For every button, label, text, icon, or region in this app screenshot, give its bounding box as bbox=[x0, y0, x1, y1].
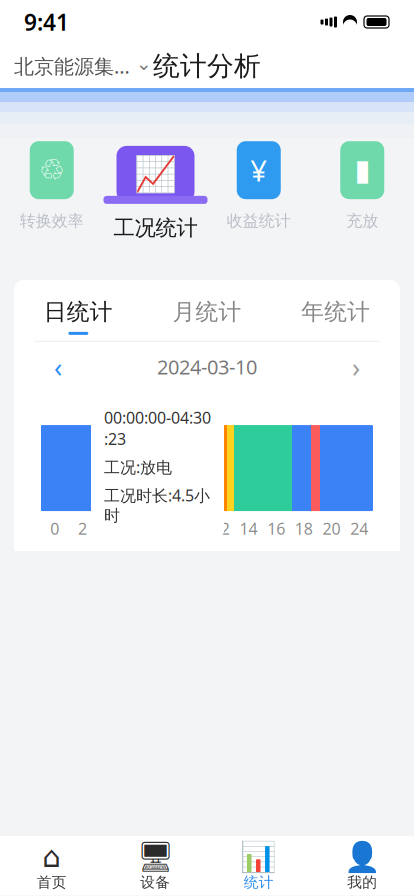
button[interactable]: 年统计 bbox=[271, 294, 400, 339]
staticText: ♲ bbox=[39, 153, 65, 187]
staticText: 静置时长： bbox=[62, 815, 157, 838]
staticText: 🖥 bbox=[137, 840, 174, 874]
button[interactable]: ♲ bbox=[0, 137, 103, 245]
staticText: 北京能源集… bbox=[14, 53, 130, 79]
button[interactable]: 月统计 bbox=[143, 294, 271, 339]
staticText: ▮ bbox=[354, 153, 370, 187]
button[interactable]: 👤 bbox=[310, 842, 414, 893]
button[interactable]: Next day bbox=[334, 350, 378, 384]
button[interactable]: 北京能源集… bbox=[0, 44, 166, 88]
button[interactable]: ¥ bbox=[207, 137, 310, 245]
staticText: ‹ bbox=[54, 349, 62, 384]
staticText: 12 bbox=[212, 518, 230, 539]
staticText: 年统计 bbox=[301, 298, 370, 326]
staticText: 首页 bbox=[37, 873, 67, 891]
staticText: 收益统计 bbox=[227, 211, 291, 231]
button[interactable]: 日统计 bbox=[14, 294, 143, 339]
staticText: 24 bbox=[350, 518, 368, 539]
staticText: ⌂ bbox=[42, 840, 61, 873]
staticText: 📊 bbox=[240, 840, 277, 874]
staticText: 充放 bbox=[346, 211, 378, 231]
staticText: 转换效率 bbox=[20, 211, 84, 231]
staticText: 故障时长： bbox=[62, 848, 157, 871]
staticText: 日统计 bbox=[44, 298, 113, 326]
staticText: 20 bbox=[322, 518, 340, 539]
staticText: 1次 bbox=[349, 814, 379, 838]
staticText: 我的 bbox=[347, 873, 377, 891]
staticText: 4 bbox=[106, 518, 115, 539]
staticText: 16 bbox=[267, 518, 285, 539]
staticText: › bbox=[352, 349, 360, 384]
button[interactable]: 📈 bbox=[103, 141, 207, 241]
staticText: 📈 bbox=[134, 154, 177, 194]
staticText: 故障次数： bbox=[252, 848, 347, 871]
staticText: ⌄ bbox=[136, 53, 152, 74]
staticText: 0 bbox=[50, 518, 59, 539]
staticText: 1次 bbox=[349, 847, 379, 871]
staticText: 统计 bbox=[244, 873, 274, 891]
button[interactable]: ⌂ bbox=[0, 842, 103, 893]
staticText: 14 bbox=[239, 518, 257, 539]
staticText: 00:00:00-04:30:23 bbox=[104, 407, 211, 449]
staticText: 静置次数： bbox=[252, 815, 347, 838]
staticText: 月统计 bbox=[172, 298, 241, 326]
button[interactable]: 📊 bbox=[207, 842, 310, 893]
staticText: 工况时长:4.5小时 bbox=[104, 485, 210, 525]
staticText: 9:41 bbox=[24, 7, 69, 37]
staticText: 4小时 bbox=[161, 847, 210, 871]
staticText: 18 bbox=[295, 518, 313, 539]
staticText: 工况统计 bbox=[113, 215, 197, 241]
staticText: 设备 bbox=[140, 873, 170, 891]
staticText: ¥ bbox=[250, 151, 267, 190]
staticText: 👤 bbox=[344, 840, 381, 874]
staticText: 2024-03-10 bbox=[157, 354, 257, 380]
staticText: 2 bbox=[78, 518, 87, 539]
button[interactable]: 🖥 bbox=[103, 842, 207, 893]
button[interactable]: ▮ bbox=[310, 137, 414, 245]
staticText: 4小时 bbox=[161, 814, 210, 838]
staticText: 统计分析 bbox=[153, 50, 261, 82]
button[interactable]: Previous day bbox=[36, 350, 80, 384]
staticText: 工况:放电 bbox=[104, 456, 172, 477]
